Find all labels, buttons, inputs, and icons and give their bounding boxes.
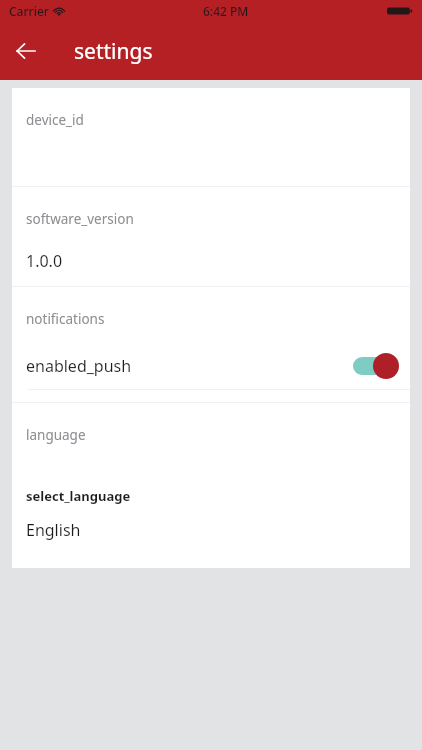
staticText: enabled_push: [26, 355, 132, 377]
staticText: Carrier: [9, 3, 49, 19]
staticText: settings: [74, 37, 153, 66]
button[interactable]: device_id: [12, 88, 410, 186]
button[interactable]: Back: [0, 22, 52, 80]
staticText: English: [26, 519, 81, 541]
button[interactable]: Toggle push notifications: [351, 351, 399, 381]
staticText: language: [26, 426, 86, 444]
staticText: device_id: [26, 111, 84, 129]
staticText: notifications: [26, 310, 105, 328]
button[interactable]: language: [12, 403, 410, 568]
staticText: select_language: [26, 487, 131, 505]
staticText: 6:42 PM: [203, 3, 249, 19]
staticText: 1.0.0: [26, 250, 63, 272]
button[interactable]: enabled_push: [12, 343, 410, 388]
button[interactable]: software_version: [12, 187, 410, 286]
staticText: software_version: [26, 210, 134, 228]
